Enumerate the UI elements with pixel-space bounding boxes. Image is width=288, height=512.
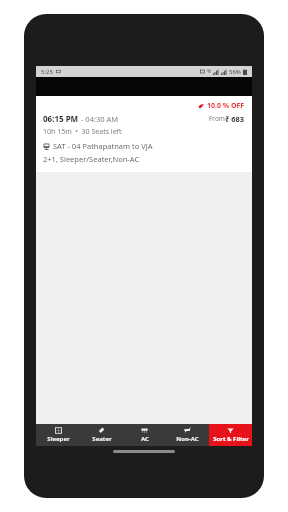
staticText: 10h 15m • 30 Seats left <box>43 127 122 137</box>
staticText: 10.0 % OFF <box>207 101 245 111</box>
button[interactable]: AC <box>123 424 166 446</box>
staticText: - 04:30 AM <box>81 114 119 124</box>
staticText: Non-AC <box>176 435 199 443</box>
button[interactable]: Non-AC <box>166 424 209 446</box>
button[interactable]: Seater <box>80 424 123 446</box>
staticText: Seater <box>92 435 112 443</box>
staticText: 06:15 PM <box>43 113 79 124</box>
button[interactable]: 10.0 % OFF <box>36 96 252 172</box>
staticText: Sleeper <box>47 435 70 443</box>
staticText: 2+1, Sleeper/Seater,Non-AC <box>43 154 140 164</box>
staticText: From <box>209 114 225 123</box>
button[interactable]: Sort & Filter <box>209 424 252 446</box>
staticText: 56% <box>229 68 241 76</box>
staticText: SAT - 04 Pathapatnam to VJA <box>53 141 153 151</box>
staticText: Sort & Filter <box>213 435 249 443</box>
button[interactable]: Sleeper <box>36 424 80 446</box>
staticText: AC <box>141 435 149 443</box>
staticText: 5:25 <box>41 68 53 76</box>
staticText: % <box>207 68 212 75</box>
staticText: ₹ 683 <box>225 114 245 124</box>
